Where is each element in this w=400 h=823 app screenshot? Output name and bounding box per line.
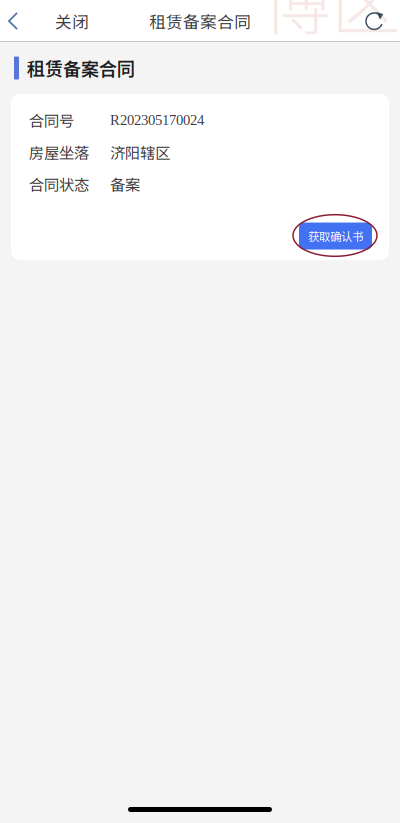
staticText: 合同状态: [29, 173, 89, 195]
button[interactable]: Back: [0, 0, 43, 42]
staticText: 租赁备案合同: [27, 55, 135, 81]
staticText: R202305170024: [110, 112, 204, 128]
staticText: 备案: [110, 173, 140, 195]
staticText: 房屋坐落: [29, 141, 89, 163]
button[interactable]: 关闭: [43, 0, 101, 42]
staticText: 合同号: [29, 109, 74, 131]
staticText: 租赁备案合同: [149, 9, 251, 33]
staticText: 关闭: [55, 9, 89, 33]
staticText: 济阳辖区: [110, 141, 170, 163]
button[interactable]: 获取确认书: [299, 222, 372, 249]
button[interactable]: Refresh: [355, 0, 400, 42]
staticText: 博区: [262, 0, 400, 49]
staticText: 获取确认书: [308, 228, 363, 244]
